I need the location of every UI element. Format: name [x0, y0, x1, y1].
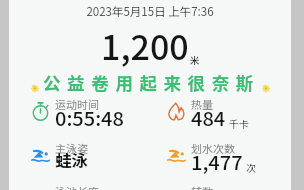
staticText: 公益卷用起来很奈斯 [43, 70, 260, 95]
staticText: 1,477 [191, 147, 243, 176]
staticText: 划水次数 [191, 140, 235, 156]
button[interactable]: 热量 [169, 97, 279, 127]
staticText: 千卡 [229, 116, 249, 130]
staticText: 2023年5月15日 上午7:36 [9, 3, 291, 20]
staticText: 蛙泳 [55, 148, 88, 172]
button[interactable]: 转数 [169, 184, 279, 190]
staticText: 运动时间 [55, 96, 99, 112]
staticText: 米 [190, 53, 200, 67]
staticText: 泳池长度 [55, 183, 99, 190]
staticText: 0:55:48 [55, 103, 124, 132]
staticText: 484 [191, 103, 226, 132]
button[interactable]: 运动时间 [33, 97, 143, 127]
staticText: 主泳姿 [55, 140, 88, 156]
button[interactable]: 划水次数 [169, 141, 279, 171]
staticText: 1,200 [101, 21, 189, 70]
staticText: 次 [246, 160, 256, 174]
button[interactable]: 主泳姿 [33, 141, 143, 171]
staticText: 热量 [191, 96, 213, 112]
staticText: 转数 [191, 183, 213, 190]
button[interactable]: 泳池长度 [33, 184, 143, 190]
